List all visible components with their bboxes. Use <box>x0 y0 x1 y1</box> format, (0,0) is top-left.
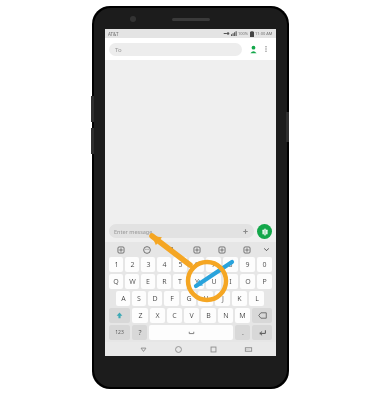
button[interactable]: Collapse toolbar <box>259 242 273 257</box>
button[interactable]: C <box>167 308 182 323</box>
staticText: 6 <box>194 260 199 270</box>
button[interactable]: Back <box>126 342 161 356</box>
button[interactable]: P <box>257 274 272 289</box>
staticText: V <box>189 311 194 321</box>
staticText: Enter message <box>114 228 153 235</box>
staticText: 2 <box>130 260 135 270</box>
staticText: O <box>245 277 251 287</box>
staticText: Y <box>195 277 199 287</box>
button[interactable]: R <box>157 274 171 289</box>
button[interactable]: Add contact <box>246 42 260 56</box>
button[interactable]: N <box>218 308 233 323</box>
button[interactable]: O <box>240 274 255 289</box>
button[interactable]: Emoji <box>134 242 159 257</box>
staticText: 11:00 AM <box>255 31 273 36</box>
button[interactable]: E <box>141 274 155 289</box>
button[interactable]: 3 <box>141 257 155 272</box>
staticText: U <box>211 277 217 287</box>
staticText: 3 <box>146 260 151 270</box>
button[interactable]: 123 <box>109 325 130 340</box>
staticText: 8 <box>228 260 233 270</box>
staticText: B <box>206 311 211 321</box>
button[interactable]: Voice input <box>159 242 184 257</box>
button[interactable]: ? <box>132 325 147 340</box>
button[interactable]: U <box>206 274 221 289</box>
button[interactable]: Recent apps <box>196 342 231 356</box>
button[interactable]: 4 <box>157 257 171 272</box>
staticText: 1 <box>114 260 119 270</box>
staticText: 0 <box>262 260 267 270</box>
staticText: 123 <box>115 329 124 336</box>
button[interactable]: 6 <box>189 257 204 272</box>
button[interactable]: G <box>181 291 196 306</box>
staticText: E <box>146 277 150 287</box>
staticText: 4 <box>162 260 167 270</box>
button[interactable]: M <box>235 308 250 323</box>
button[interactable]: More options <box>260 43 272 55</box>
button[interactable]: 7 <box>206 257 221 272</box>
staticText: X <box>155 311 160 321</box>
button[interactable]: Clipboard <box>209 242 234 257</box>
staticText: G <box>186 294 192 304</box>
staticText: AT&T <box>108 31 119 37</box>
staticText: P <box>262 277 267 287</box>
button[interactable]: 9 <box>240 257 255 272</box>
button[interactable]: S <box>132 291 146 306</box>
staticText: D <box>152 294 158 304</box>
button[interactable]: Enter message <box>109 224 254 238</box>
button[interactable]: X <box>150 308 165 323</box>
staticText: L <box>255 294 259 304</box>
staticText: K <box>237 294 242 304</box>
button[interactable]: Q <box>109 274 123 289</box>
button[interactable]: Stickers <box>184 242 209 257</box>
staticText: S <box>137 294 141 304</box>
staticText: M <box>239 311 246 321</box>
button[interactable]: I <box>223 274 238 289</box>
button[interactable]: D <box>148 291 162 306</box>
button[interactable]: Home <box>161 342 196 356</box>
button[interactable]: F <box>164 291 179 306</box>
button[interactable]: Shift <box>109 308 130 323</box>
staticText: J <box>222 294 224 304</box>
button[interactable]: V <box>184 308 199 323</box>
staticText: 100% <box>238 31 249 36</box>
button[interactable]: H <box>198 291 213 306</box>
button[interactable]: Space <box>149 325 233 340</box>
button[interactable]: To <box>109 43 242 56</box>
staticText: I <box>229 277 232 287</box>
staticText: A <box>121 294 126 304</box>
button[interactable]: 2 <box>125 257 139 272</box>
button[interactable]: L <box>249 291 264 306</box>
staticText: To <box>115 46 122 54</box>
button[interactable]: W <box>125 274 139 289</box>
button[interactable]: . <box>235 325 250 340</box>
button[interactable]: Z <box>132 308 148 323</box>
staticText: 5 <box>178 260 183 270</box>
button[interactable]: Hide keyboard <box>231 342 266 356</box>
staticText: . <box>242 328 244 338</box>
button[interactable]: 0 <box>257 257 272 272</box>
staticText: Q <box>113 277 119 287</box>
button[interactable]: 8 <box>223 257 238 272</box>
button[interactable]: Y <box>189 274 204 289</box>
staticText: N <box>223 311 229 321</box>
button[interactable]: Send voice message <box>257 224 272 239</box>
button[interactable]: Backspace <box>252 308 272 323</box>
staticText: C <box>172 311 177 321</box>
staticText: H <box>203 294 209 304</box>
staticText: F <box>170 294 174 304</box>
staticText: W <box>129 277 136 287</box>
button[interactable]: T <box>173 274 187 289</box>
button[interactable]: 5 <box>173 257 187 272</box>
staticText: Z <box>138 311 143 321</box>
button[interactable]: Settings <box>108 242 134 257</box>
staticText: T <box>178 277 182 287</box>
button[interactable]: B <box>201 308 216 323</box>
button[interactable]: Themes <box>234 242 259 257</box>
button[interactable]: Enter <box>252 325 272 340</box>
button[interactable]: 1 <box>109 257 123 272</box>
button[interactable]: A <box>116 291 130 306</box>
button[interactable]: K <box>232 291 247 306</box>
staticText: 9 <box>245 260 250 270</box>
button[interactable]: J <box>215 291 230 306</box>
